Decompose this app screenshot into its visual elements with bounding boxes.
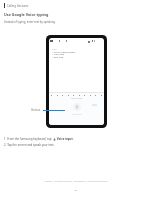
staticText: 31 (0, 188, 152, 191)
staticText: Go to a (31, 108, 41, 112)
staticText: Use Google Voice typing (4, 12, 49, 17)
staticText: Instead of typing, enter text by speakin… (4, 20, 56, 24)
staticText: Calling Gestures (7, 4, 29, 8)
staticText: • Set an appointment (52, 51, 76, 54)
button[interactable]: Voice input (73, 103, 81, 111)
staticText: Voice input. (56, 137, 74, 141)
staticText: Title (52, 48, 57, 51)
staticText: Tap to speak (71, 97, 83, 100)
staticText: Tap to edit (72, 113, 82, 116)
staticText: 1. From the Samsung keyboard, tap (4, 137, 53, 141)
staticText: Settings Accessing Settings Connections … (0, 180, 152, 183)
staticText: • Call Mom (52, 53, 65, 56)
staticText: • Buy milk (52, 56, 64, 59)
staticText: 2. Tap the screen and speak your text. (4, 143, 55, 147)
